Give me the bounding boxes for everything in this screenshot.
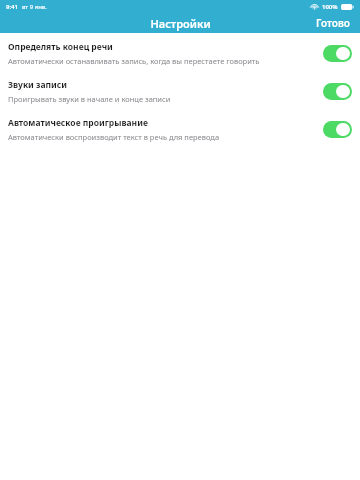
other: Wi-Fi [310, 3, 319, 10]
staticText: Автоматически останавливать запись, когд… [8, 56, 260, 66]
button[interactable]: Toggle [323, 121, 352, 138]
button[interactable]: Toggle [323, 83, 352, 100]
staticText: Настройки [150, 16, 211, 31]
staticText: вт 9 янв. [22, 3, 47, 11]
button[interactable]: Автоматическое проигрывание [0, 115, 360, 144]
button[interactable]: Готово [306, 13, 360, 33]
staticText: Готово [316, 16, 350, 30]
staticText: 100% [322, 3, 338, 11]
staticText: Автоматическое проигрывание [8, 117, 148, 129]
button[interactable]: Toggle [323, 45, 352, 62]
staticText: Звуки записи [8, 79, 67, 91]
staticText: 9:41 [6, 3, 18, 11]
button[interactable]: Определять конец речи [0, 39, 360, 68]
staticText: Определять конец речи [8, 41, 113, 53]
other: Battery [341, 4, 354, 10]
staticText: Автоматически воспроизводит текст в речь… [8, 132, 220, 142]
staticText: Проигрывать звуки в начале и конце запис… [8, 94, 171, 104]
button[interactable]: Звуки записи [0, 77, 360, 106]
